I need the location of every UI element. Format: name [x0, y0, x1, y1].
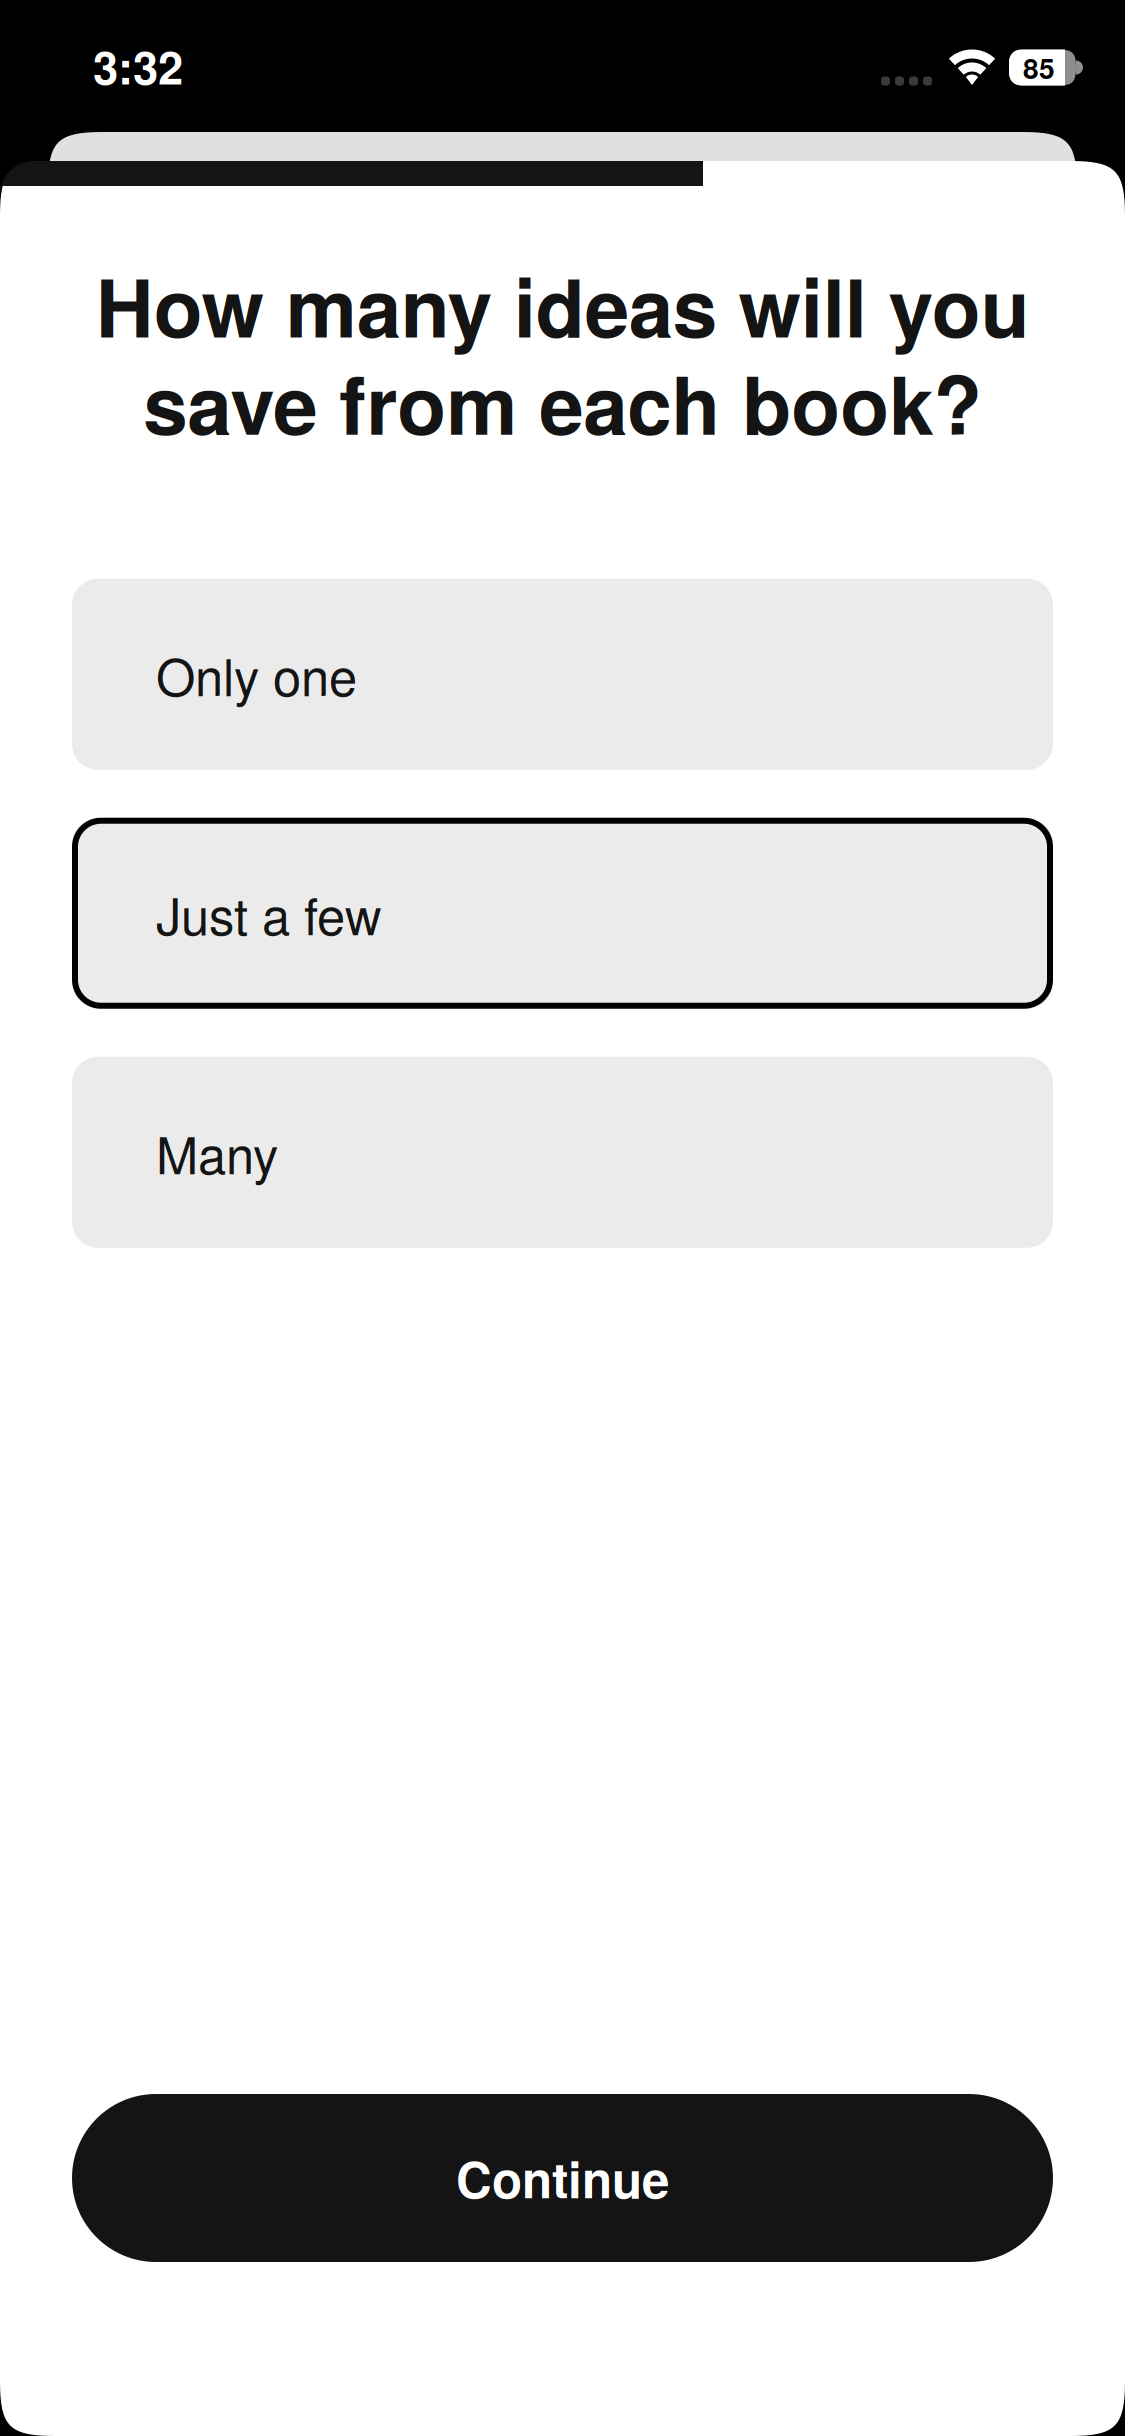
staticText: 3:32	[93, 33, 183, 98]
staticText: How many ideas will you save from each b…	[95, 256, 1029, 451]
button[interactable]: Many	[72, 1057, 1053, 1248]
staticText: Many	[156, 1116, 278, 1189]
staticText: Just a few	[156, 877, 382, 950]
button[interactable]: Continue	[72, 2094, 1053, 2262]
staticText: 85	[1023, 47, 1055, 88]
button[interactable]: Just a few	[72, 818, 1053, 1009]
staticText: Only one	[156, 638, 357, 711]
staticText: Continue	[456, 2143, 669, 2213]
button[interactable]: Only one	[72, 579, 1053, 770]
